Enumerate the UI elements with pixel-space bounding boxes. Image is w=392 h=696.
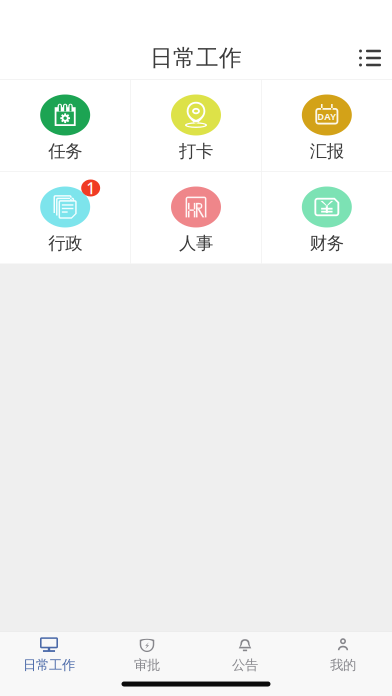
staticText: 1	[86, 177, 95, 199]
button[interactable]: 1	[0, 172, 130, 263]
button[interactable]: 审批	[98, 631, 196, 680]
button[interactable]: Menu	[348, 36, 392, 80]
staticText: 日常工作	[23, 657, 75, 673]
staticText: 审批	[134, 657, 160, 673]
staticText: 日常工作	[150, 44, 242, 72]
staticText: 人事	[179, 232, 213, 254]
button[interactable]: 我的	[294, 631, 392, 680]
staticText: 打卡	[179, 140, 213, 162]
button[interactable]: 公告	[196, 631, 294, 680]
button[interactable]: 任务	[0, 80, 130, 171]
button[interactable]: 打卡	[131, 80, 261, 171]
button[interactable]: 财务	[262, 172, 392, 263]
staticText: 行政	[48, 232, 82, 254]
button[interactable]: 人事	[131, 172, 261, 263]
staticText: 任务	[48, 140, 82, 162]
staticText: DAY	[317, 110, 336, 123]
staticText: 汇报	[310, 140, 344, 162]
button[interactable]: DAY	[262, 80, 392, 171]
staticText: 我的	[330, 657, 356, 673]
button[interactable]: 日常工作	[0, 631, 98, 680]
staticText: 财务	[310, 232, 344, 254]
staticText: 公告	[232, 657, 258, 673]
